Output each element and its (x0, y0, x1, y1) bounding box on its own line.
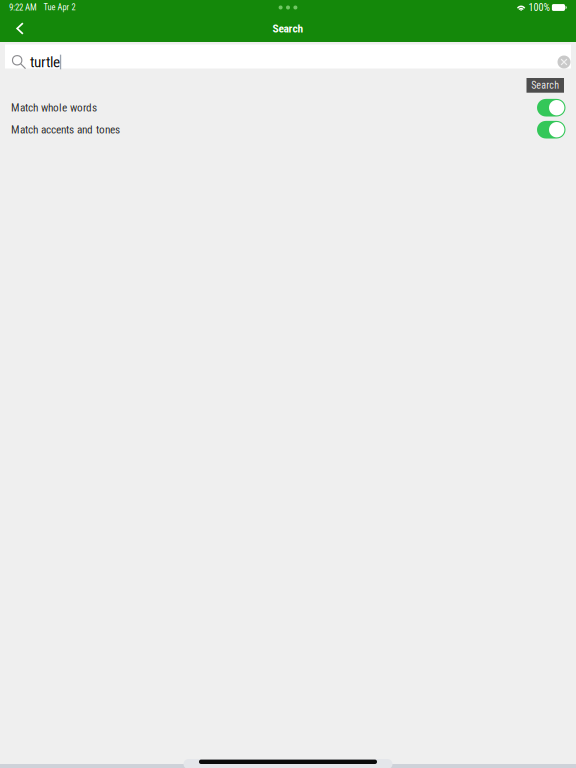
staticText: Search (272, 22, 303, 35)
staticText: Tue Apr 2 (43, 3, 75, 12)
staticText: Search (531, 79, 559, 91)
button[interactable]: Clear search text (555, 52, 573, 72)
staticText: turtle (30, 53, 60, 71)
staticText: Match whole words (11, 101, 97, 114)
staticText: Match accents and tones (11, 123, 120, 136)
button[interactable]: Match accents and tones (0, 119, 576, 141)
button[interactable]: Search (526, 78, 564, 93)
staticText: 9:22 AM (9, 2, 37, 13)
button[interactable]: Back (0, 15, 40, 42)
staticText: 100% (528, 2, 549, 13)
button[interactable]: Match whole words (0, 97, 576, 119)
